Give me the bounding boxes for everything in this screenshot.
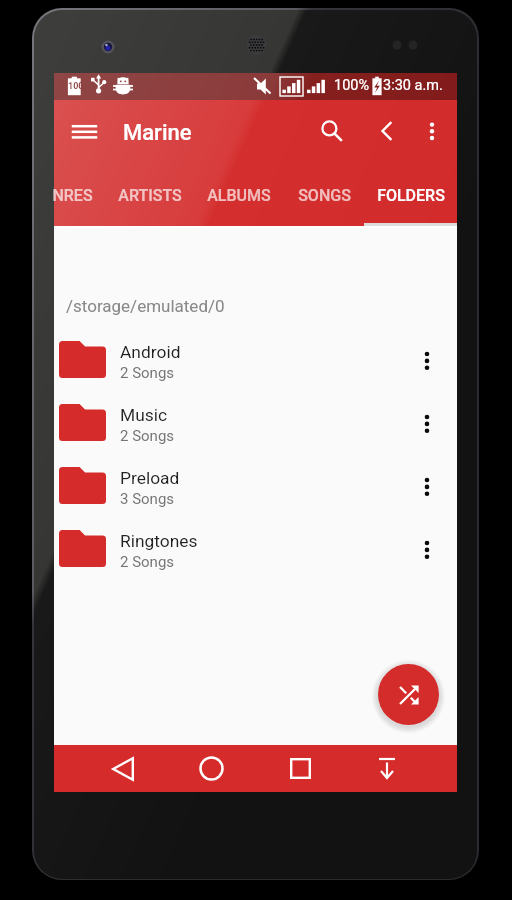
staticText: 3 Songs xyxy=(120,490,175,508)
button[interactable]: More options xyxy=(403,518,451,580)
staticText: ALBUMS xyxy=(207,186,271,205)
button[interactable]: Home xyxy=(179,745,243,792)
staticText: 2 Songs xyxy=(120,364,175,382)
staticText: NRES xyxy=(52,186,93,205)
button[interactable]: More options xyxy=(403,329,451,391)
button[interactable]: Search xyxy=(308,107,356,155)
staticText: /storage/emulated/0 xyxy=(66,296,225,316)
button[interactable]: Preload xyxy=(54,454,457,517)
staticText: Ringtones xyxy=(120,531,198,551)
button[interactable]: Navigate up xyxy=(363,107,411,155)
button[interactable]: SONGS xyxy=(284,166,364,225)
button[interactable]: Shuffle xyxy=(378,664,439,725)
staticText: 100% xyxy=(334,77,370,94)
button[interactable]: Hide keyboard xyxy=(355,745,419,792)
button[interactable]: Back xyxy=(91,745,155,792)
staticText: SONGS xyxy=(298,186,351,205)
button[interactable]: Recent apps xyxy=(268,745,332,792)
button[interactable]: FOLDERS xyxy=(364,166,458,225)
staticText: Android xyxy=(120,342,181,362)
staticText: FOLDERS xyxy=(377,186,445,205)
staticText: 2 Songs xyxy=(120,553,175,571)
staticText: 100 xyxy=(68,81,84,92)
button[interactable]: More options xyxy=(403,455,451,517)
button[interactable]: Open navigation drawer xyxy=(60,107,108,155)
staticText: Preload xyxy=(120,468,180,488)
button[interactable]: Music xyxy=(54,391,457,454)
button[interactable]: Ringtones xyxy=(54,517,457,580)
staticText: ARTISTS xyxy=(118,186,182,205)
staticText: Music xyxy=(120,405,168,425)
button[interactable]: ARTISTS xyxy=(103,166,197,225)
button[interactable]: Android xyxy=(54,328,457,391)
staticText: 2 Songs xyxy=(120,427,175,445)
button[interactable]: More options xyxy=(403,392,451,454)
button[interactable]: ALBUMS xyxy=(189,166,289,225)
staticText: Marine xyxy=(123,120,192,146)
staticText: 3:30 a.m. xyxy=(383,77,443,94)
button[interactable]: More options xyxy=(408,107,456,155)
button[interactable]: NRES xyxy=(34,166,110,225)
